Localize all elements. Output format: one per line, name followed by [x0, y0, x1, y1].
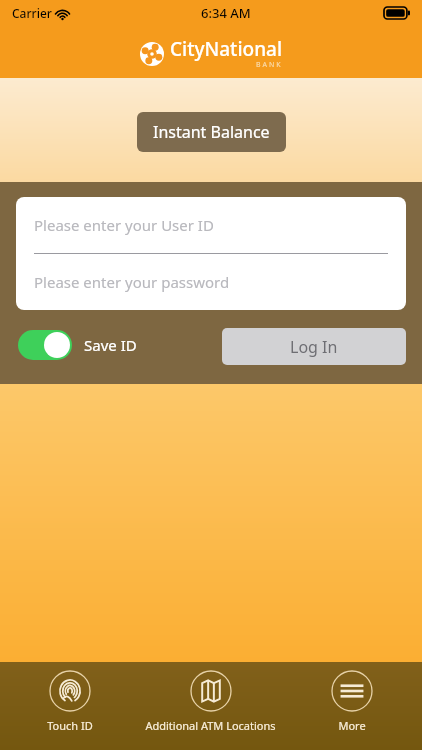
- button[interactable]: More: [281, 662, 422, 733]
- button[interactable]: Save ID: [18, 330, 137, 360]
- staticText: Touch ID: [47, 718, 93, 733]
- staticText: More: [338, 718, 366, 733]
- staticText: Please enter your User ID: [34, 215, 214, 235]
- button[interactable]: Log In: [222, 328, 406, 365]
- staticText: 6:34 AM: [201, 4, 251, 22]
- button[interactable]: Touch ID: [0, 662, 140, 733]
- staticText: Carrier: [12, 5, 52, 21]
- staticText: Log In: [290, 336, 338, 358]
- staticText: Instant Balance: [153, 121, 270, 143]
- staticText: Please enter your password: [34, 272, 230, 292]
- staticText: BANK: [256, 60, 283, 70]
- button[interactable]: Instant Balance: [137, 112, 286, 152]
- staticText: Save ID: [84, 335, 137, 355]
- button[interactable]: Please enter your User ID: [16, 197, 406, 253]
- staticText: CityNational: [170, 36, 283, 62]
- staticText: Additional ATM Locations: [145, 718, 276, 733]
- button[interactable]: Additional ATM Locations: [140, 662, 281, 733]
- button[interactable]: Please enter your password: [16, 254, 406, 310]
